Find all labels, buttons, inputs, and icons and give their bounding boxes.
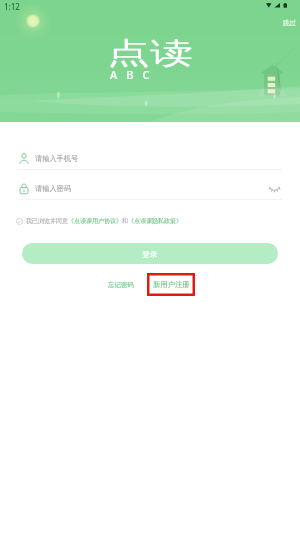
button[interactable]: 我已浏览并同意 [16, 215, 182, 227]
staticText: 忘记密码 [108, 281, 134, 289]
button[interactable]: 跳过 [279, 17, 300, 29]
staticText: 1:12 [4, 1, 20, 12]
button[interactable]: 新用户注册 [147, 273, 195, 296]
staticText: 跳过 [283, 19, 296, 27]
staticText: 《点读课隐私政策》 [128, 217, 182, 225]
staticText: 我已浏览并同意 [26, 217, 68, 225]
button[interactable]: Toggle password visibility [268, 182, 281, 195]
staticText: 新用户注册 [153, 280, 190, 289]
staticText: ABC [110, 67, 159, 82]
button[interactable]: 登录 [22, 243, 278, 264]
staticText: 请输入手机号 [35, 154, 79, 163]
staticText: 登录 [142, 249, 158, 259]
staticText: 和 [122, 217, 128, 225]
staticText: 请输入密码 [35, 184, 71, 193]
staticText: 《点读课用户协议》 [68, 217, 122, 225]
button[interactable]: 忘记密码 [104, 278, 138, 292]
staticText: 点读 [107, 35, 193, 71]
